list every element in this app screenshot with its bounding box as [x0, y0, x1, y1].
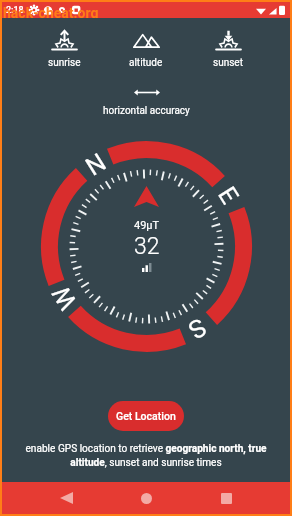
staticText: horizontal accuracy	[103, 105, 190, 117]
button[interactable]: horizontal accuracy	[103, 89, 190, 117]
staticText: sunrise	[48, 57, 81, 69]
staticText: sunset	[213, 57, 243, 69]
staticText: 49µT	[134, 219, 160, 232]
staticText: N	[81, 147, 111, 181]
button[interactable]: Get Location	[108, 401, 184, 431]
staticText: 2:18	[6, 5, 24, 16]
staticText: hack-cheat.org	[3, 5, 99, 21]
button[interactable]: Home	[106, 482, 186, 514]
staticText: Get Location	[116, 410, 176, 422]
staticText: 32	[134, 233, 160, 260]
staticText: altitude	[129, 57, 163, 69]
staticText: E	[212, 181, 245, 210]
button[interactable]: sunrise	[23, 28, 105, 71]
button[interactable]: Recent apps	[186, 482, 266, 514]
button[interactable]: altitude	[105, 28, 187, 71]
staticText: enable GPS location to retrieve geograph…	[16, 443, 276, 468]
staticText: W	[46, 280, 83, 315]
staticText: S	[183, 312, 212, 345]
button[interactable]: Back	[26, 482, 106, 514]
button[interactable]: sunset	[187, 28, 269, 71]
